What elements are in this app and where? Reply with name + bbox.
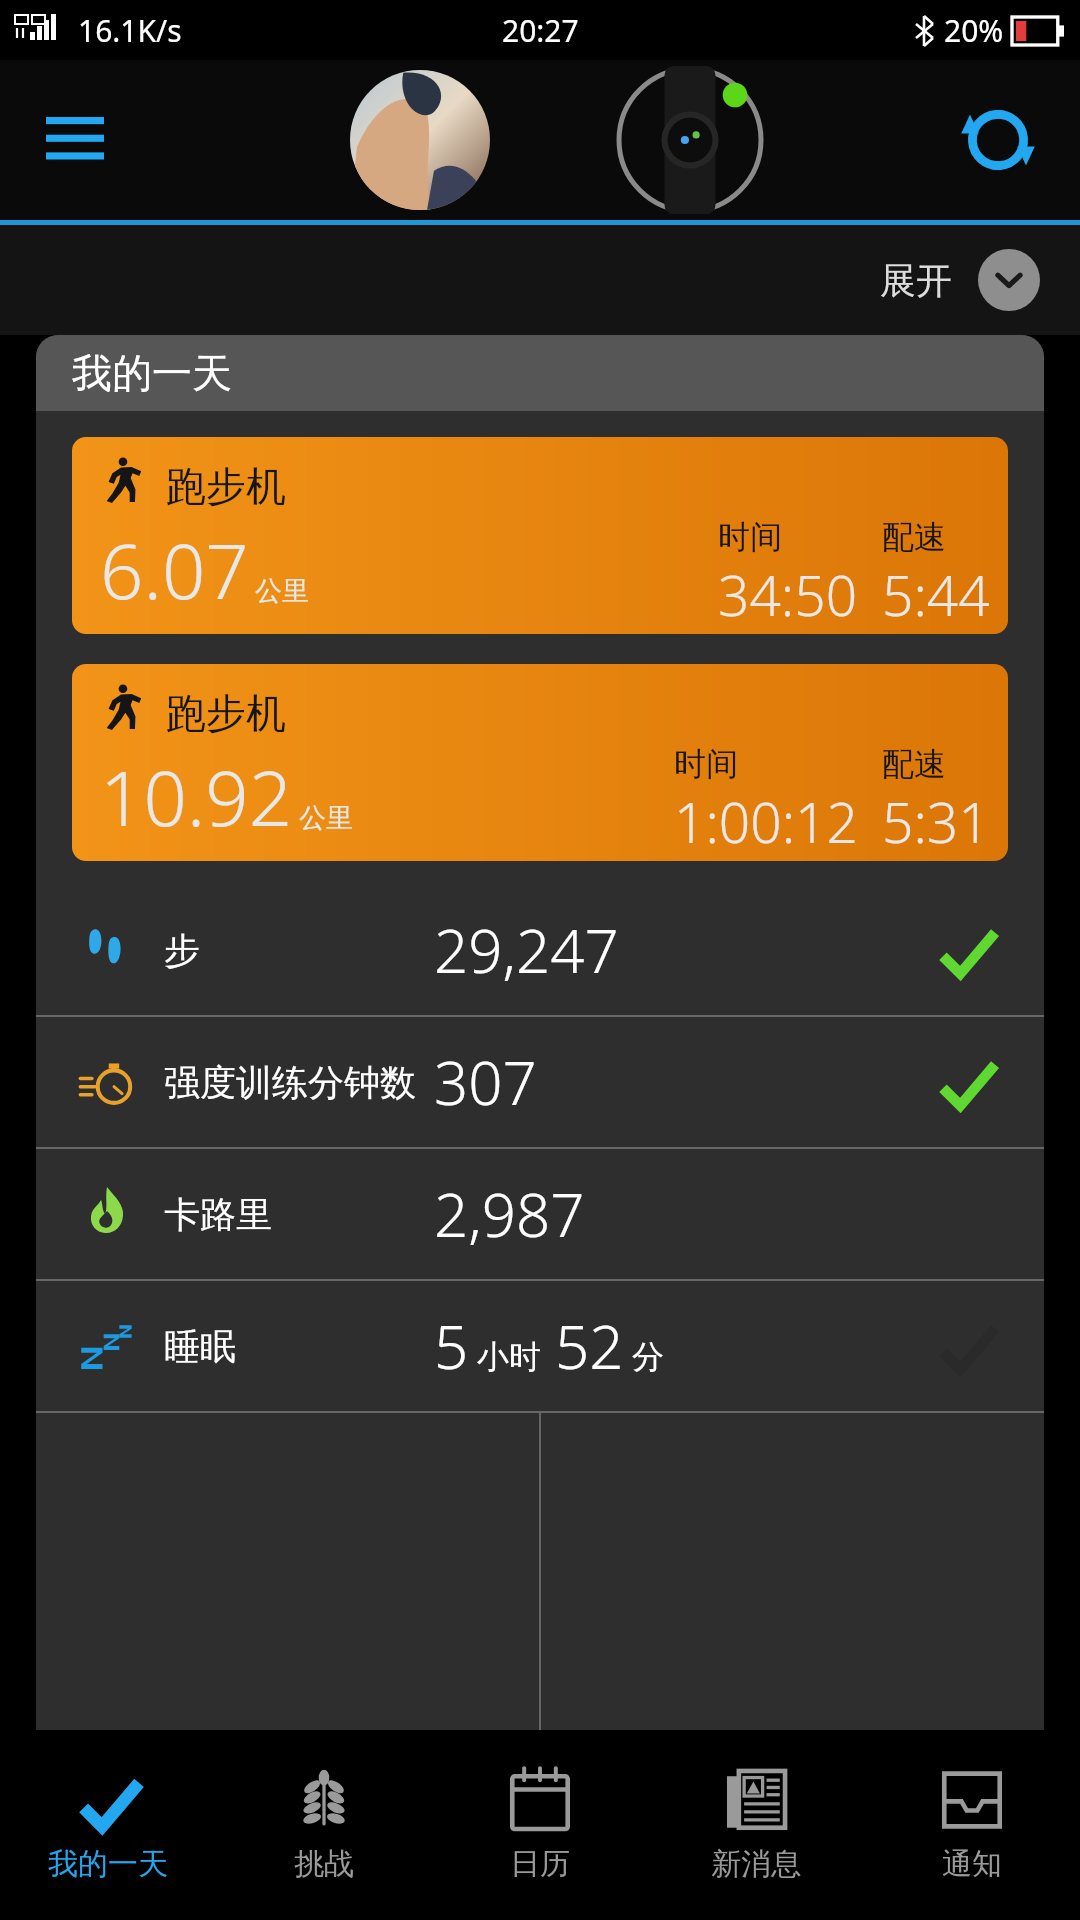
staticText: 配速 [882,744,946,784]
staticText: 步 [164,928,200,973]
staticText: 时间 [674,744,738,784]
staticText: 跑步机 [166,688,286,738]
button[interactable]: Sync [948,90,1048,190]
staticText: 20% [944,10,1004,51]
button[interactable]: 日历 [432,1730,648,1920]
staticText: 5 [434,1305,469,1387]
button[interactable]: 展开 [880,249,1080,311]
staticText: 睡眠 [164,1324,236,1369]
staticText: 10.92 [100,745,293,849]
staticText: 新消息 [711,1845,801,1883]
button[interactable]: 我的一天 [36,335,1044,411]
staticText: 展开 [880,258,952,303]
staticText: 跑步机 [166,461,286,511]
button[interactable]: 卡路里 [36,1149,1044,1279]
staticText: 20:27 [502,10,579,51]
button[interactable]: 强度训练分钟数 [36,1017,1044,1147]
button[interactable]: 挑战 [216,1730,432,1920]
staticText: 我的一天 [72,348,232,398]
staticText: 公里 [299,801,353,835]
staticText: 1:00:12 [674,784,858,849]
button[interactable]: 通知 [864,1730,1080,1920]
staticText: 16.1K/s [78,10,182,51]
staticText: 52 [555,1305,624,1387]
button[interactable]: 步 [36,885,1044,1015]
staticText: 配速 [882,517,946,557]
staticText: 强度训练分钟数 [164,1060,416,1105]
staticText: 挑战 [294,1845,354,1883]
button[interactable]: Device [615,65,765,215]
staticText: 29,247 [434,909,619,991]
staticText: 卡路里 [164,1192,272,1237]
staticText: 通知 [942,1845,1002,1883]
staticText: 我的一天 [48,1845,168,1883]
staticText: 公里 [255,574,309,608]
staticText: 5:31 [882,784,990,849]
staticText: 时间 [718,517,782,557]
staticText: 日历 [510,1845,570,1883]
staticText: 6.07 [100,518,249,622]
button[interactable]: 跑步机 [72,437,1008,634]
button[interactable]: 新消息 [648,1730,864,1920]
button[interactable]: Profile [350,70,490,210]
staticText: 小时 [477,1337,541,1377]
staticText: 分 [632,1337,664,1377]
button[interactable]: 睡眠 [36,1281,1044,1411]
button[interactable]: Menu [30,95,120,185]
button[interactable]: 我的一天 [0,1730,216,1920]
button[interactable]: 跑步机 [72,664,1008,861]
staticText: 307 [434,1041,537,1123]
staticText: 5:44 [882,557,990,622]
staticText: 2,987 [434,1173,585,1255]
staticText: 34:50 [718,557,858,622]
